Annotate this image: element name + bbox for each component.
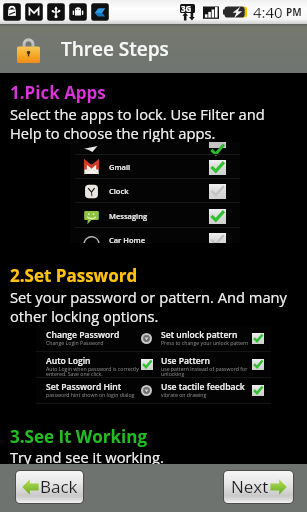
button[interactable]: Auto Login <box>36 352 150 377</box>
staticText: Car Home <box>109 235 145 243</box>
staticText: 4:40 <box>253 2 283 22</box>
staticText: 3G <box>181 3 192 14</box>
button[interactable]: Change Password <box>36 326 150 351</box>
staticText: 3.See It Working <box>10 425 148 448</box>
staticText: Auto Login <box>46 355 91 367</box>
staticText: Change Login Password <box>46 339 104 346</box>
staticText: Press to change your unlock pattern <box>161 339 249 346</box>
button[interactable]: Use Pattern <box>154 352 271 377</box>
button[interactable]: Messaging <box>70 204 240 228</box>
button[interactable]: Gmail <box>70 155 240 179</box>
button[interactable]: Back <box>16 471 83 503</box>
staticText: vibrate on drawing <box>161 391 207 398</box>
button[interactable]: Next <box>224 471 293 503</box>
staticText: Change Password <box>46 329 120 341</box>
staticText: 2.Set Password <box>10 264 138 287</box>
staticText: Messaging <box>109 211 148 221</box>
staticText: use pattern instead of password for unlo… <box>161 365 248 378</box>
staticText: Auto Login when password is correctly en… <box>46 365 139 378</box>
staticText: Clock <box>109 186 129 196</box>
staticText: password hint shown on login dialog <box>46 391 135 398</box>
staticText: Next <box>231 475 269 498</box>
button[interactable]: Use tactile feedback <box>154 378 271 403</box>
staticText: PM <box>286 5 302 19</box>
staticText: Three Steps <box>61 36 169 62</box>
staticText: Back <box>40 475 78 498</box>
staticText: Select the apps to lock. Use Filter and … <box>10 104 265 143</box>
staticText: Use tactile feedback <box>161 381 245 393</box>
button[interactable]: Set unlock pattern <box>154 326 271 351</box>
button[interactable]: Set Password Hint <box>36 378 150 403</box>
button[interactable]: Car Home <box>70 228 240 243</box>
staticText: Use Pattern <box>161 355 210 367</box>
staticText: Gmail <box>109 162 131 172</box>
button[interactable]: Clock <box>70 179 240 203</box>
staticText: 1.Pick Apps <box>10 81 106 104</box>
staticText: Set unlock pattern <box>161 329 238 341</box>
staticText: Set Password Hint <box>46 381 122 393</box>
staticText: Set your password or pattern. And many o… <box>10 287 287 326</box>
staticText: Try and see it working. <box>10 447 164 467</box>
